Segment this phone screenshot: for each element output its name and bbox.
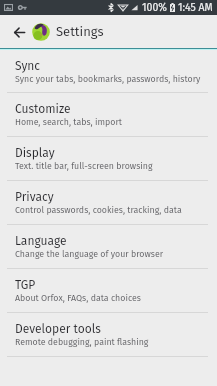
button[interactable]: Back (0, 17, 32, 47)
staticText: Text. title bar, full-screen browsing (15, 161, 153, 172)
staticText: 1:45 AM (178, 1, 213, 14)
staticText: Settings (56, 24, 104, 40)
button[interactable]: Privacy (0, 181, 217, 225)
staticText: TGP (15, 278, 36, 292)
button[interactable]: Developer tools (0, 313, 217, 357)
button[interactable]: Customize (0, 93, 217, 137)
staticText: Home, search, tabs, import (15, 117, 122, 128)
staticText: About Orfox, FAQs, data choices (15, 293, 141, 304)
button[interactable]: Language (0, 225, 217, 269)
staticText: Developer tools (15, 322, 101, 336)
staticText: Display (15, 146, 55, 160)
staticText: Privacy (15, 190, 54, 204)
staticText: Remote debugging, paint flashing (15, 337, 149, 348)
button[interactable]: Sync (0, 50, 217, 93)
staticText: Customize (15, 102, 71, 116)
staticText: Control passwords, cookies, tracking, da… (15, 205, 182, 216)
button[interactable]: TGP (0, 269, 217, 313)
staticText: 100% (142, 1, 167, 14)
staticText: Sync (15, 59, 41, 73)
staticText: Sync your tabs, bookmarks, passwords, hi… (15, 74, 201, 85)
staticText: Language (15, 234, 67, 248)
button[interactable]: Display (0, 137, 217, 181)
staticText: Change the language of your browser (15, 249, 164, 260)
